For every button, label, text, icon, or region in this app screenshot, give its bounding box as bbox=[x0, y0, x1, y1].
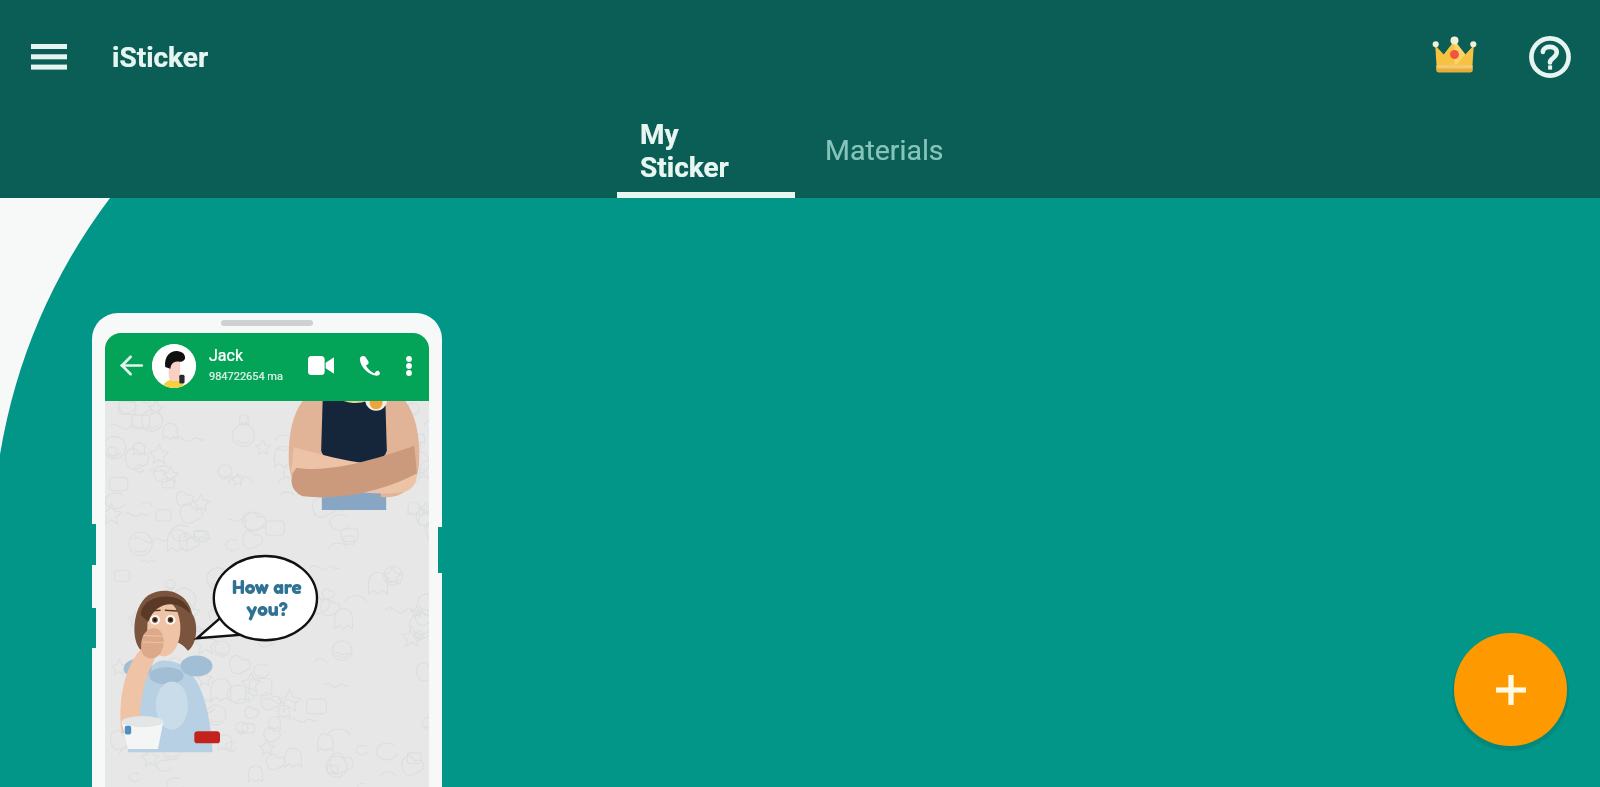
staticText: 984722654 ma bbox=[209, 370, 283, 383]
button[interactable]: Menu bbox=[13, 21, 85, 93]
staticText: Materials bbox=[825, 134, 944, 167]
button[interactable]: Add sticker bbox=[1454, 633, 1567, 746]
staticText: iSticker bbox=[112, 41, 209, 74]
staticText: Jack bbox=[209, 346, 244, 365]
button[interactable]: My Sticker bbox=[617, 110, 795, 198]
button[interactable]: Materials bbox=[795, 110, 973, 198]
button[interactable]: Help bbox=[1514, 21, 1586, 93]
button[interactable]: Premium bbox=[1415, 15, 1493, 93]
staticText: How are you? bbox=[232, 575, 302, 620]
button[interactable]: Sticker pack preview bbox=[92, 313, 442, 787]
staticText: My Sticker bbox=[640, 118, 729, 184]
